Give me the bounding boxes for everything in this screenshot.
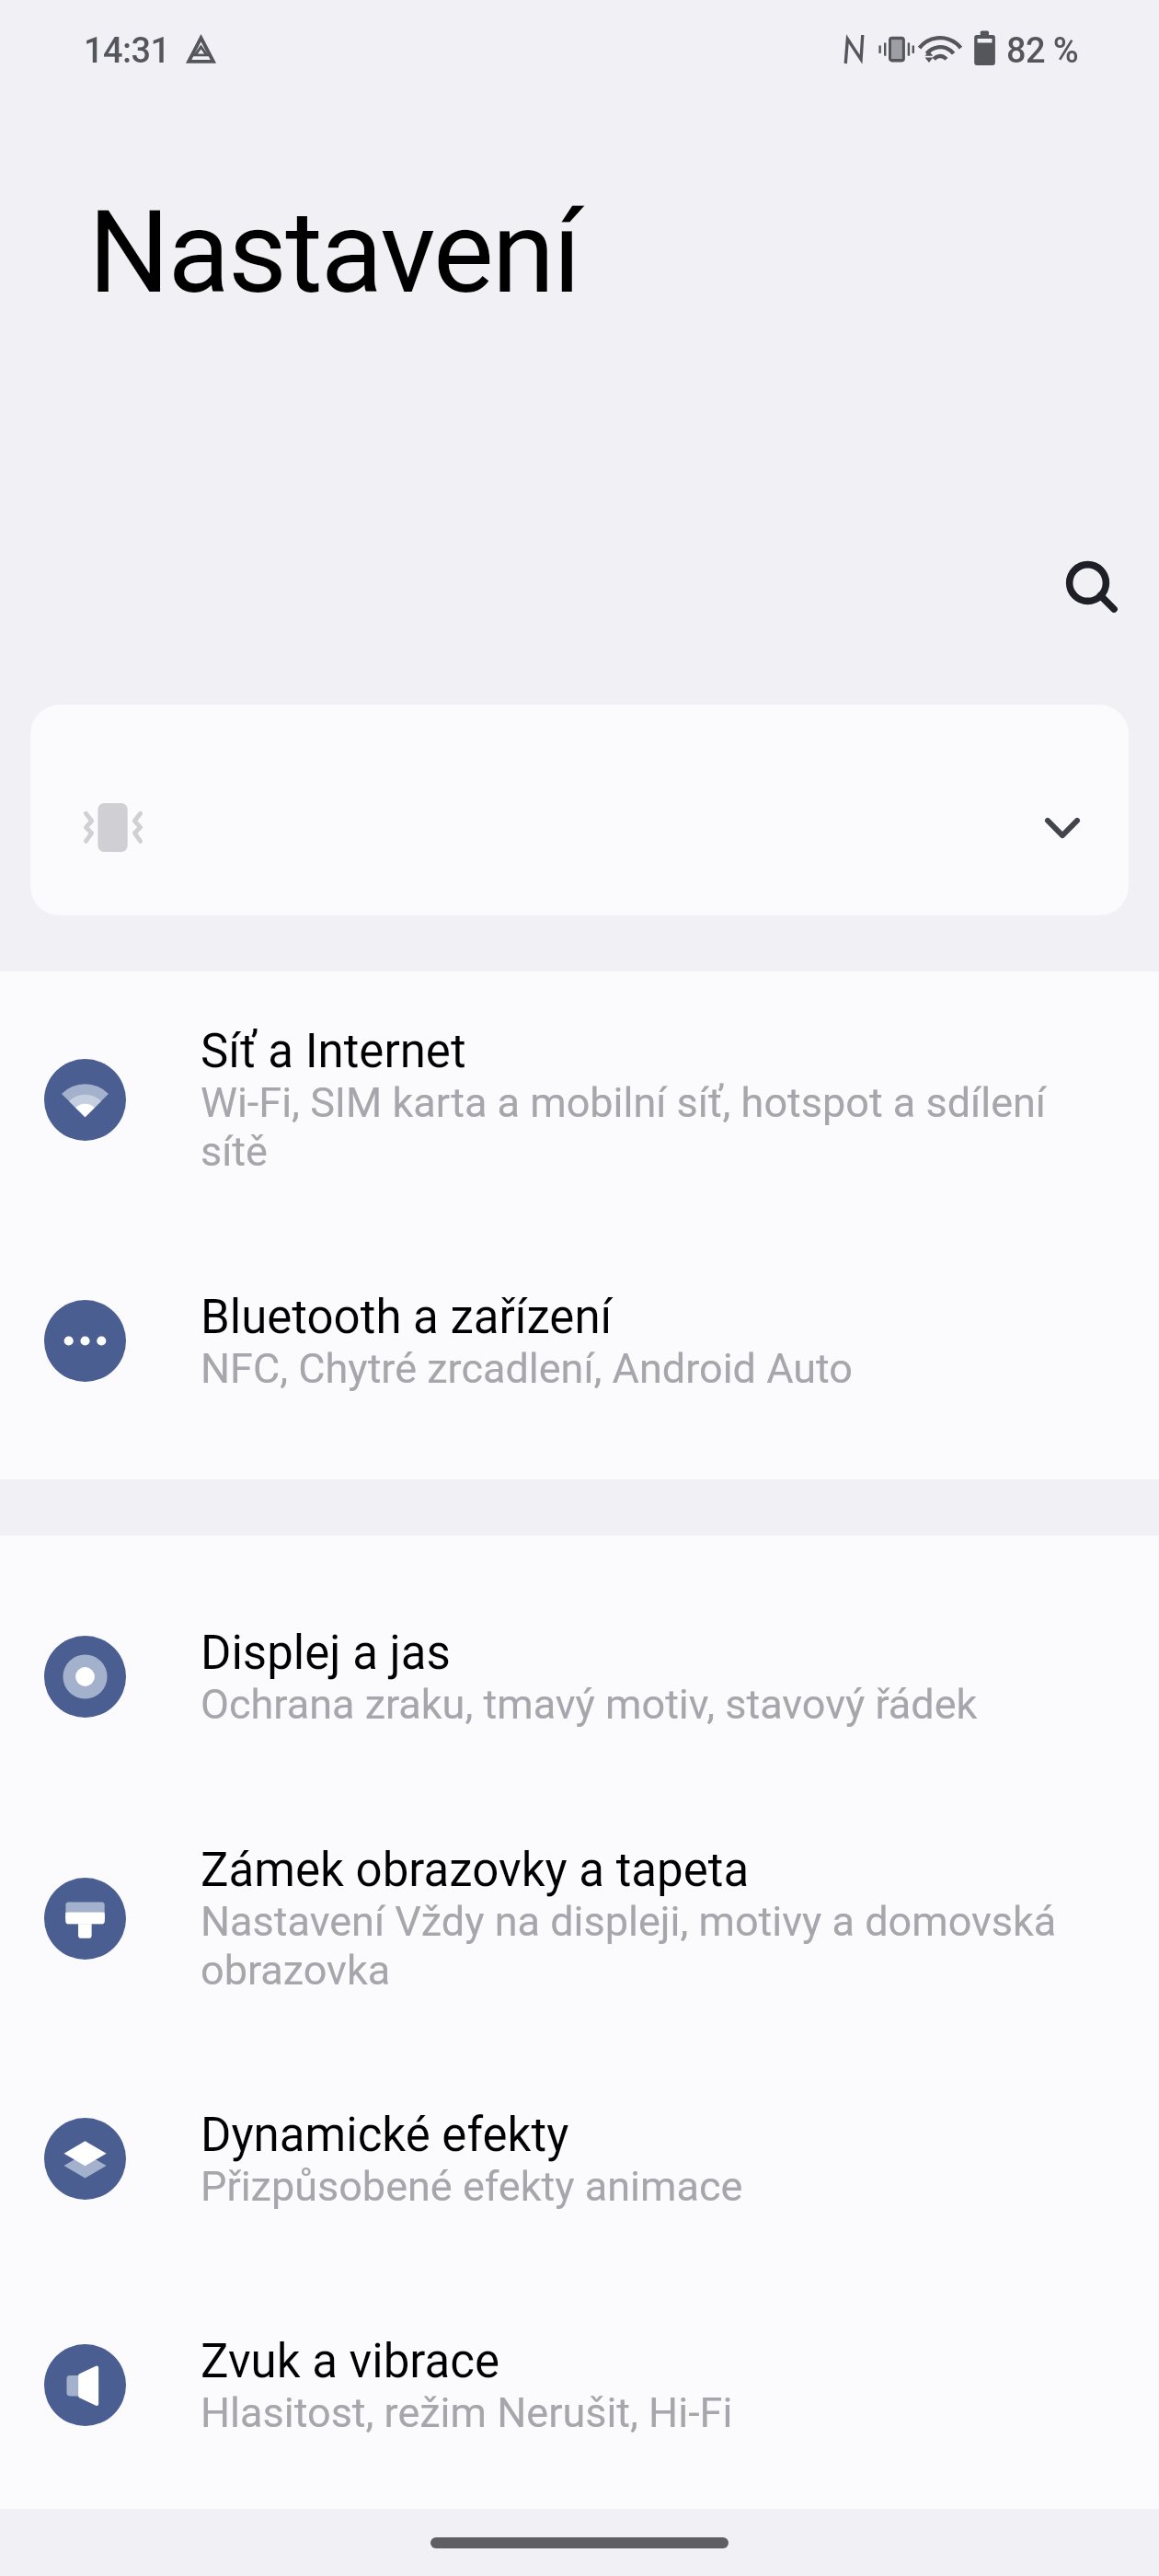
button[interactable]: Síť a Internet — [0, 986, 1159, 1213]
staticText: Zvuk a vibrace — [201, 2333, 500, 2388]
staticText: Ochrana zraku, tmavý motiv, stavový řáde… — [201, 1680, 978, 1729]
button[interactable]: Displej a jas — [0, 1563, 1159, 1789]
staticText: Síť a Internet — [201, 1023, 466, 1078]
staticText: NFC, Chytré zrcadlení, Android Auto — [201, 1344, 854, 1393]
staticText: Displej a jas — [201, 1625, 451, 1680]
button[interactable]: Search — [1048, 543, 1135, 630]
staticText: Zámek obrazovky a tapeta — [201, 1842, 750, 1897]
staticText: Wi-Fi, SIM karta a mobilní síť, hotspot … — [201, 1078, 1060, 1176]
button[interactable]: Zvuk a vibrace — [0, 2296, 1159, 2474]
staticText: Nastavení Vždy na displeji, motivy a dom… — [201, 1897, 1060, 1995]
button[interactable]: Bluetooth a zařízení — [0, 1252, 1159, 1430]
staticText: 82 % — [1006, 30, 1079, 72]
staticText: Bluetooth a zařízení — [201, 1289, 613, 1344]
staticText: Dynamické efekty — [201, 2107, 569, 2162]
staticText: Nastavení — [88, 186, 580, 319]
staticText: Přizpůsobené efekty animace — [201, 2162, 743, 2211]
staticText: Hlasitost, režim Nerušit, Hi-Fi — [201, 2388, 733, 2437]
button[interactable]: Zámek obrazovky a tapeta — [0, 1805, 1159, 2031]
button[interactable] — [30, 705, 1129, 915]
staticText: 14:31 — [84, 30, 170, 72]
button[interactable]: Dynamické efekty — [0, 2070, 1159, 2248]
